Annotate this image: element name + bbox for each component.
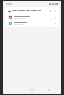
button[interactable]: Back [5,7,59,14]
button[interactable]: Insert suggestion [53,22,56,25]
button[interactable]: Insert suggestion [5,20,59,26]
button[interactable]: Insert suggestion [53,16,56,19]
button[interactable]: Home [28,86,36,94]
button[interactable]: Voice search [53,9,57,13]
button[interactable]: Insert suggestion [5,14,59,20]
button[interactable]: Recent apps [45,86,53,94]
button[interactable]: Clear query [48,9,52,13]
button[interactable]: Back [7,9,11,13]
